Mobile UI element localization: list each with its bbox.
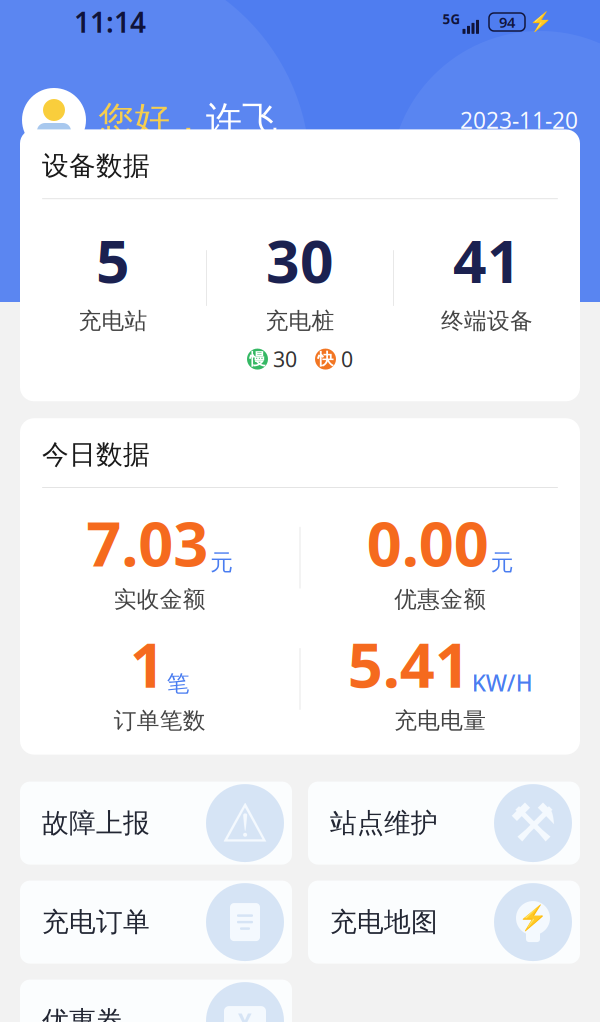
staticText: 优惠金额 xyxy=(394,585,486,613)
staticText: 今日数据 xyxy=(42,438,150,471)
staticText: ⚠ xyxy=(221,793,269,853)
staticText: 充电电量 xyxy=(394,707,486,734)
staticText: 实收金额 xyxy=(114,585,206,613)
staticText: ⚒ xyxy=(509,793,557,853)
staticText: 0 xyxy=(341,345,353,373)
staticText: 笔 xyxy=(167,670,190,698)
staticText: 94 xyxy=(499,12,515,32)
staticText: 5G xyxy=(442,10,460,28)
staticText: 订单笔数 xyxy=(114,707,206,734)
staticText: 元 xyxy=(210,549,233,576)
staticText: 慢 xyxy=(249,349,265,369)
staticText: 充电桩 xyxy=(265,307,334,335)
button[interactable]: ¥ xyxy=(20,980,292,1022)
staticText: 优惠券 xyxy=(42,1005,123,1022)
staticText: ⚡ xyxy=(518,904,548,932)
staticText: ¥ xyxy=(238,1005,252,1022)
staticText: 充电站 xyxy=(78,307,147,335)
staticText: 1 xyxy=(130,623,165,705)
staticText: 终端设备 xyxy=(441,307,533,335)
staticText: 充电地图 xyxy=(330,906,438,938)
button[interactable]: ⚒ xyxy=(308,782,580,865)
staticText: 41 xyxy=(453,221,521,299)
button[interactable]: 充电订单 xyxy=(20,881,292,964)
staticText: 充电订单 xyxy=(42,906,150,938)
staticText: ⚡ xyxy=(529,11,552,33)
staticText: 设备数据 xyxy=(42,149,150,182)
staticText: 许飞 xyxy=(206,98,278,142)
staticText: 元 xyxy=(491,549,514,576)
staticText: 11:14 xyxy=(74,3,146,41)
staticText: 30 xyxy=(266,221,334,299)
staticText: 5 xyxy=(96,221,130,299)
staticText: 30 xyxy=(273,345,297,373)
staticText: 2023-11-20 xyxy=(460,105,578,135)
staticText: 您好， xyxy=(98,98,206,142)
button[interactable]: ⚡ xyxy=(308,881,580,964)
button[interactable]: ⚠ xyxy=(20,782,292,865)
staticText: 故障上报 xyxy=(42,807,150,839)
staticText: 站点维护 xyxy=(330,807,438,839)
staticText: 5.41 xyxy=(348,623,470,705)
staticText: 快 xyxy=(317,349,333,369)
staticText: 0.00 xyxy=(367,502,489,583)
staticText: 7.03 xyxy=(86,502,208,583)
staticText: KW/H xyxy=(472,668,533,698)
